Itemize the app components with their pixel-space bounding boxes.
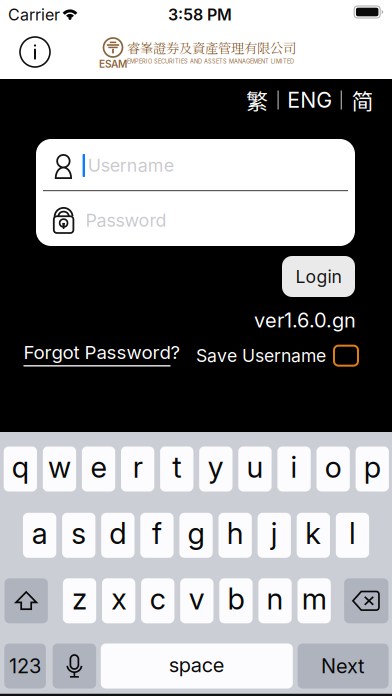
button[interactable]: t: [160, 446, 193, 491]
button[interactable]: q: [4, 446, 37, 491]
staticText: d: [109, 516, 126, 551]
staticText: ver1.6.0.gn: [254, 308, 356, 332]
button[interactable]: j: [258, 513, 291, 558]
button[interactable]: x: [102, 578, 135, 623]
staticText: 123: [9, 654, 41, 678]
button[interactable]: Next: [298, 643, 389, 688]
button[interactable]: v: [180, 578, 213, 623]
staticText: Next: [321, 654, 365, 678]
button[interactable]: b: [219, 578, 253, 623]
button[interactable]: l: [336, 513, 369, 558]
button[interactable]: r: [121, 446, 154, 491]
staticText: Password: [85, 209, 166, 231]
button[interactable]: o: [316, 446, 350, 491]
staticText: ?: [170, 341, 180, 364]
staticText: u: [246, 449, 263, 485]
button[interactable]: e: [82, 446, 115, 491]
button[interactable]: m: [297, 578, 331, 623]
staticText: ENG: [287, 87, 332, 113]
button[interactable]: Login: [282, 256, 355, 297]
button[interactable]: c: [141, 578, 174, 623]
button[interactable]: Information: [13, 30, 57, 74]
staticText: Forgot Password: [23, 341, 170, 364]
button[interactable]: k: [297, 513, 330, 558]
button[interactable]: f: [140, 513, 174, 558]
staticText: j: [271, 516, 278, 551]
staticText: 繁: [246, 84, 268, 116]
staticText: b: [227, 581, 244, 617]
staticText: h: [227, 516, 244, 551]
staticText: v: [189, 581, 205, 617]
button[interactable]: a: [23, 513, 56, 558]
staticText: x: [111, 581, 126, 617]
staticText: Carrier: [8, 5, 60, 24]
staticText: z: [72, 581, 87, 617]
button[interactable]: z: [63, 578, 96, 623]
staticText: e: [90, 449, 106, 485]
staticText: Save Username: [196, 345, 326, 366]
staticText: r: [133, 449, 143, 485]
staticText: n: [266, 581, 283, 617]
button[interactable]: i: [277, 446, 311, 491]
button[interactable]: 繁: [245, 87, 269, 113]
staticText: y: [208, 449, 224, 485]
button[interactable]: d: [101, 513, 134, 558]
button[interactable]: Shift: [4, 578, 48, 623]
button[interactable]: Dictate: [53, 643, 96, 688]
button[interactable]: 123: [4, 643, 46, 688]
staticText: 睿峯證券及資產管理有限公司: [127, 38, 296, 57]
staticText: i: [290, 449, 297, 485]
button[interactable]: w: [43, 446, 76, 491]
staticText: o: [325, 449, 342, 485]
button[interactable]: Forgot Password: [23, 341, 180, 366]
staticText: g: [187, 516, 204, 551]
button[interactable]: h: [218, 513, 252, 558]
button[interactable]: u: [238, 446, 272, 491]
staticText: 3:58 PM: [168, 5, 232, 24]
button[interactable]: p: [356, 446, 389, 491]
staticText: s: [71, 516, 86, 551]
button[interactable]: g: [179, 513, 213, 558]
staticText: l: [349, 516, 356, 551]
button[interactable]: 简: [350, 87, 374, 113]
staticText: f: [152, 516, 162, 551]
staticText: t: [172, 449, 181, 485]
staticText: EMPERIO SECURITIES AND ASSETS MANAGEMENT…: [127, 58, 294, 65]
button[interactable]: s: [62, 513, 95, 558]
staticText: p: [364, 449, 381, 485]
staticText: m: [302, 581, 327, 617]
button[interactable]: Save Username: [196, 345, 358, 366]
staticText: k: [305, 516, 321, 551]
staticText: 简: [351, 84, 373, 116]
staticText: q: [12, 449, 29, 485]
staticText: Username: [88, 154, 174, 176]
staticText: ESAM: [99, 58, 127, 70]
staticText: Login: [295, 266, 341, 287]
staticText: a: [32, 516, 48, 551]
button[interactable]: n: [258, 578, 292, 623]
button[interactable]: ENG: [287, 87, 332, 113]
staticText: space: [169, 653, 225, 677]
button[interactable]: space: [101, 643, 293, 688]
staticText: c: [150, 581, 166, 617]
button[interactable]: y: [199, 446, 232, 491]
staticText: w: [48, 449, 71, 485]
button[interactable]: Delete: [344, 578, 388, 623]
